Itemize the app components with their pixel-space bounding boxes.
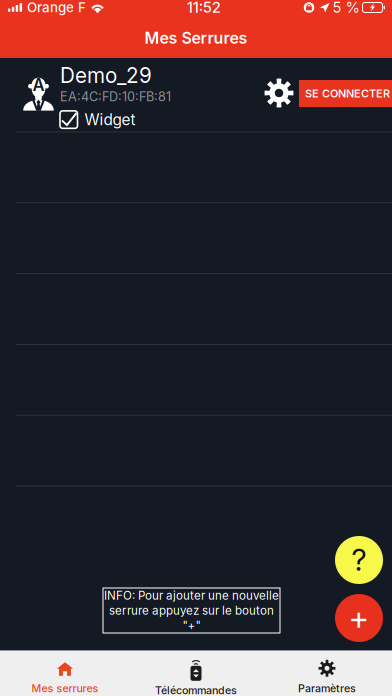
staticText: Demo_29 (60, 63, 152, 88)
staticText: Mes serrures (31, 682, 98, 695)
button[interactable]: Aide (335, 536, 383, 584)
staticText: 5 % (332, 0, 359, 16)
staticText: serrure appuyez sur le bouton (109, 603, 274, 617)
staticText: Orange F (27, 0, 86, 16)
button[interactable]: SE CONNECTER (299, 80, 392, 107)
button[interactable]: Télécommandes (130, 651, 262, 696)
staticText: Télécommandes (155, 684, 237, 696)
button[interactable]: Réglages de la serrure (259, 76, 299, 110)
button[interactable]: Paramètres (262, 651, 392, 696)
staticText: 11:52 (187, 0, 221, 16)
staticText: A (32, 75, 44, 95)
staticText: + (348, 599, 369, 637)
staticText: INFO: Pour ajouter une nouvelle (104, 588, 279, 602)
staticText: Widget (84, 110, 135, 129)
staticText: Paramètres (298, 682, 356, 695)
staticText: "+" (182, 618, 200, 632)
button[interactable]: Ajouter une serrure (335, 594, 383, 642)
staticText: ? (351, 542, 366, 578)
button[interactable]: Mes serrures (0, 651, 130, 696)
staticText: Mes Serrures (144, 28, 247, 48)
staticText: SE CONNECTER (305, 87, 390, 100)
staticText: EA:4C:FD:10:FB:81 (60, 89, 171, 104)
